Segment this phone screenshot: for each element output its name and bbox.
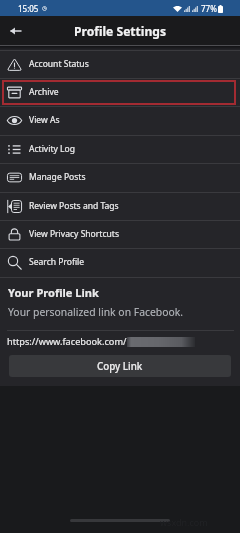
button[interactable]: Archive xyxy=(0,78,240,106)
staticText: 77% xyxy=(201,3,217,14)
staticText: Account Status xyxy=(29,58,89,70)
button[interactable]: View Privacy Shortcuts xyxy=(0,220,240,248)
staticText: Review Posts and Tags xyxy=(29,200,119,212)
staticText: 15:05 xyxy=(18,3,39,14)
button[interactable]: Account Status xyxy=(0,50,240,78)
button[interactable]: Search Profile xyxy=(0,248,240,276)
button[interactable]: Activity Log xyxy=(0,135,240,163)
staticText: wsxdn.com xyxy=(160,516,208,528)
button[interactable]: View As xyxy=(0,106,240,134)
staticText: Archive xyxy=(29,86,59,98)
staticText: Profile Settings xyxy=(74,23,167,39)
staticText: https://www.facebook.com/ xyxy=(7,335,127,348)
staticText: Activity Log xyxy=(29,143,75,155)
staticText: View As xyxy=(29,114,60,126)
staticText: Search Profile xyxy=(29,256,85,268)
staticText: Copy Link xyxy=(97,360,143,373)
button[interactable]: Review Posts and Tags xyxy=(0,192,240,220)
button[interactable]: Back xyxy=(1,17,29,45)
button[interactable]: Manage Posts xyxy=(0,163,240,191)
button[interactable]: Copy Link xyxy=(9,355,231,377)
staticText: View Privacy Shortcuts xyxy=(29,228,119,240)
staticText: Your Profile Link xyxy=(8,285,99,300)
staticText: Manage Posts xyxy=(29,171,86,183)
staticText: Your personalized link on Facebook. xyxy=(8,305,184,319)
